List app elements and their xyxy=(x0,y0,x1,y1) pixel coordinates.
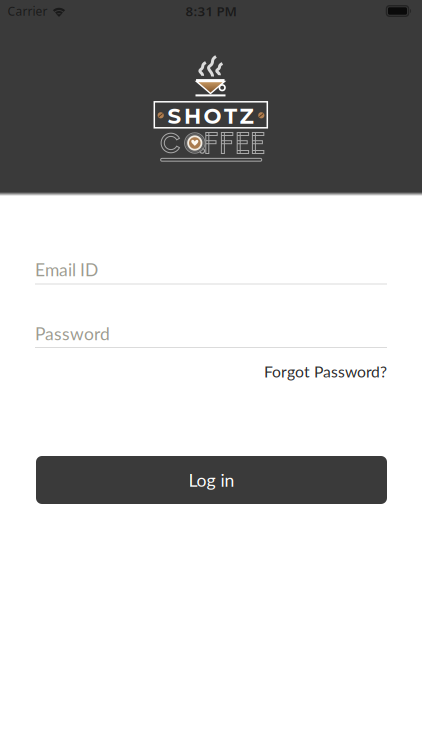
staticText: Carrier xyxy=(7,3,47,19)
button[interactable]: Log in xyxy=(36,456,387,504)
staticText: Email ID xyxy=(35,259,98,280)
staticText: Log in xyxy=(188,469,234,490)
staticText: Forgot Password? xyxy=(264,362,387,381)
secureTextField[interactable]: Password xyxy=(35,323,387,344)
staticText: 8:31 PM xyxy=(185,2,236,20)
staticText: Password xyxy=(35,323,110,344)
textField[interactable]: Email ID xyxy=(35,259,387,280)
staticText: SHOTZ xyxy=(167,103,253,129)
button[interactable]: Forgot Password? xyxy=(264,362,387,381)
